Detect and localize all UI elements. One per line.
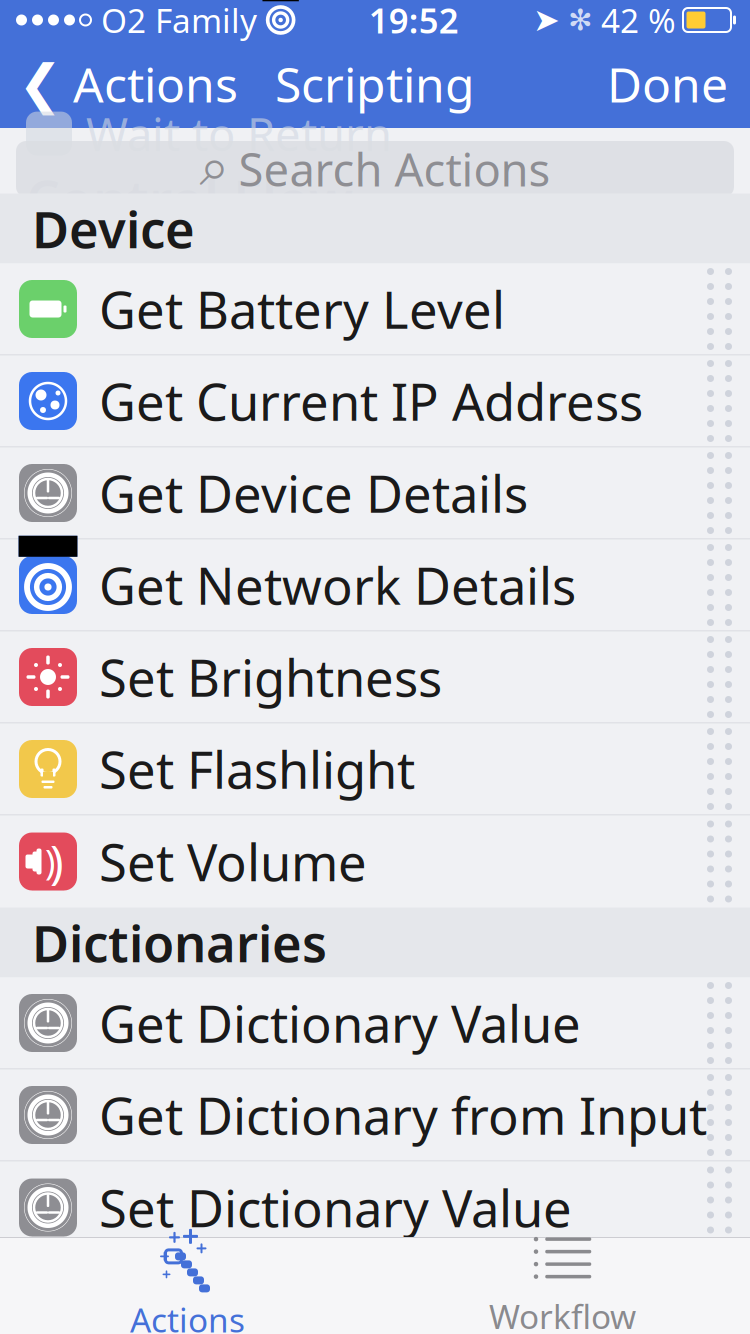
staticText: O2 Family <box>101 0 257 42</box>
button[interactable]: Set Dictionary Value <box>0 1161 750 1253</box>
button[interactable]: Get Device Details <box>0 447 750 539</box>
button[interactable]: Set Brightness <box>0 631 750 723</box>
staticText: Done <box>607 52 728 116</box>
staticText: Set Dictionary Value <box>99 1174 572 1241</box>
button[interactable]: ✦ <box>0 1238 375 1334</box>
staticText: Control Flow <box>26 164 353 234</box>
staticText: Get Device Details <box>99 459 528 527</box>
button[interactable]: Workflow <box>375 1238 750 1334</box>
staticText: Set Volume <box>99 828 367 895</box>
button[interactable]: ) <box>0 815 750 907</box>
button[interactable]: Get Battery Level <box>0 263 750 355</box>
staticText: Wait to Return <box>86 103 392 164</box>
staticText: Device <box>32 195 195 262</box>
staticText: Dictionaries <box>32 909 327 976</box>
staticText: Actions <box>130 1297 245 1334</box>
staticText: Scripting <box>275 52 475 116</box>
button[interactable]: Get Dictionary Value <box>0 977 750 1069</box>
button[interactable]: Get Current IP Address <box>0 355 750 447</box>
staticText: ) <box>50 831 64 892</box>
staticText: Actions <box>73 52 238 116</box>
staticText: Workflow <box>489 1294 636 1334</box>
staticText: Get Network Details <box>99 551 576 619</box>
staticText: Set Brightness <box>99 643 442 711</box>
button[interactable]: ❮ <box>0 42 252 126</box>
staticText: Set Flashlight <box>99 735 415 803</box>
button[interactable]: Set Flashlight <box>0 723 750 815</box>
staticText: ) <box>45 838 55 884</box>
staticText: Get Dictionary from Input <box>99 1081 707 1149</box>
staticText: Get Battery Level <box>99 275 505 343</box>
staticText: Get Dictionary Value <box>99 989 581 1057</box>
button[interactable]: Done <box>585 42 750 126</box>
staticText: 19:52 <box>369 0 459 43</box>
staticText: ✻ <box>568 3 593 37</box>
button[interactable]: Get Network Details <box>0 539 750 631</box>
staticText: ❮ <box>18 54 63 114</box>
staticText: 42 % <box>601 0 676 42</box>
button[interactable]: Get Dictionary from Input <box>0 1069 750 1161</box>
button[interactable]: ⌕ <box>16 141 734 197</box>
staticText: ➤ <box>533 2 560 38</box>
staticText: Search Actions <box>238 139 550 199</box>
staticText: Get Current IP Address <box>99 367 643 435</box>
staticText: ⌕ <box>199 143 229 195</box>
